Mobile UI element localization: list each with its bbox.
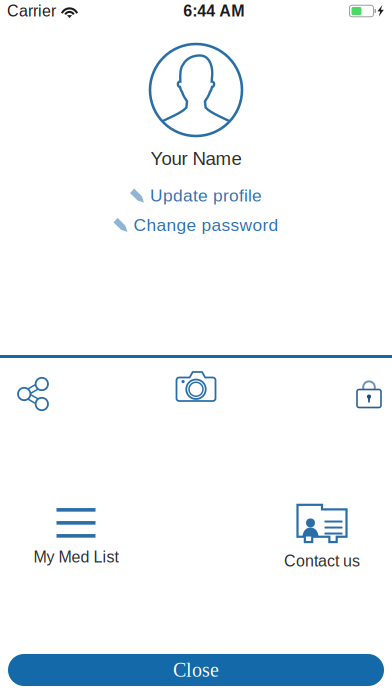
button[interactable]: Contact us (246, 505, 392, 569)
button[interactable]: Close (8, 654, 384, 686)
button[interactable]: My Med List (0, 505, 152, 569)
button[interactable]: Take photo (163, 372, 229, 414)
staticText: Your Name (150, 148, 241, 169)
button[interactable]: Change password (113, 212, 278, 238)
staticText: 6:44 AM (183, 2, 244, 20)
button[interactable]: Share (0, 372, 66, 414)
staticText: Change password (133, 215, 278, 235)
button[interactable]: Privacy (326, 372, 392, 414)
staticText: Update profile (150, 186, 262, 205)
staticText: My Med List (33, 548, 118, 566)
staticText: Contact us (284, 552, 360, 570)
staticText: Carrier (7, 2, 56, 20)
staticText: Close (173, 659, 219, 681)
button[interactable]: Update profile (130, 183, 262, 208)
